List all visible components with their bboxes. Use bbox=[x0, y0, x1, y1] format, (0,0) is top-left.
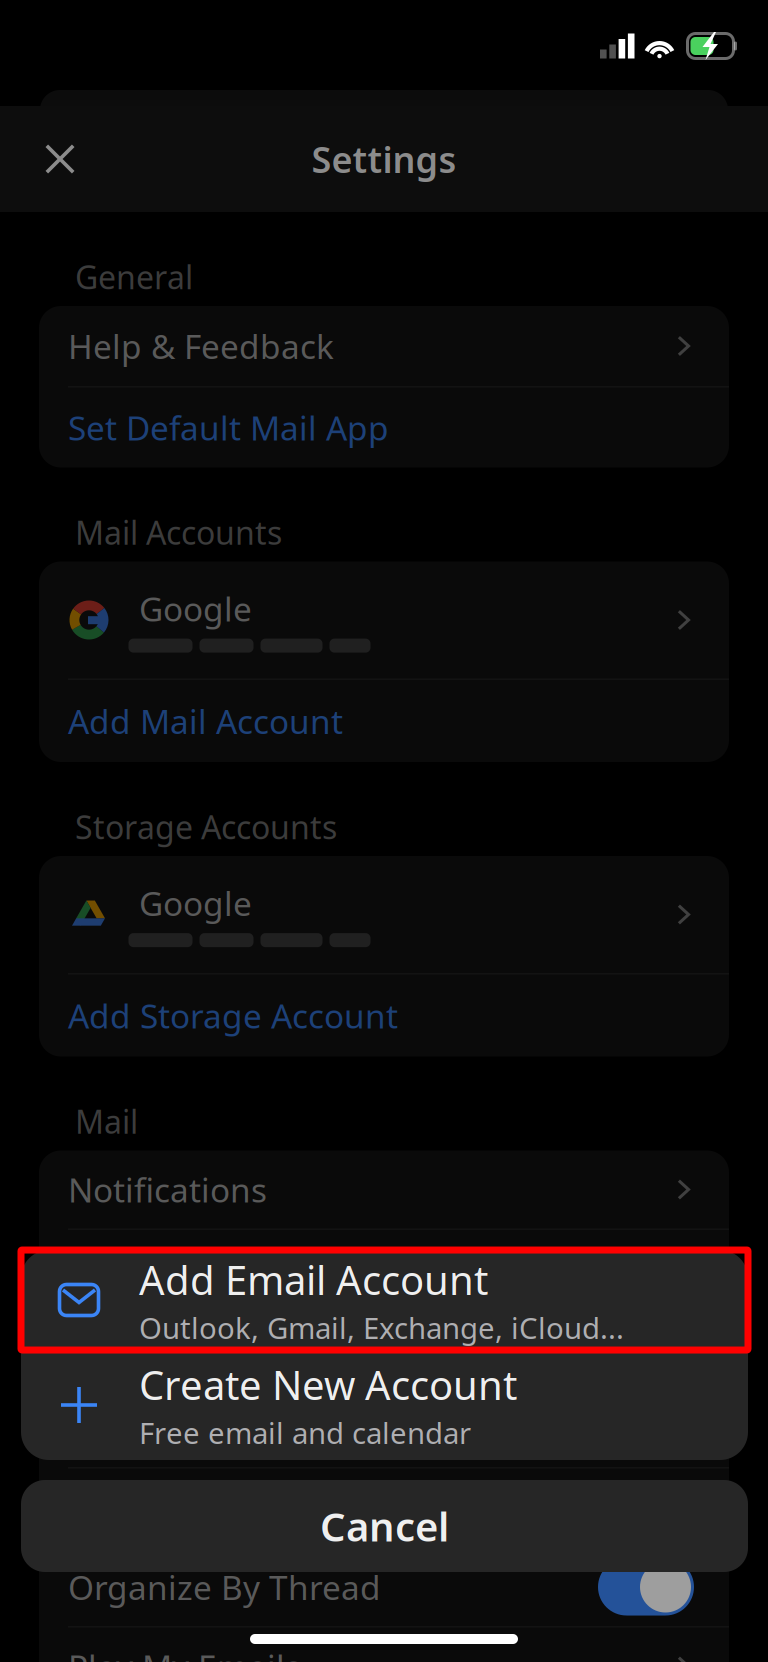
staticText: Add Email Account bbox=[139, 1253, 488, 1306]
staticText: Help & Feedback bbox=[68, 324, 334, 368]
button[interactable]: Add Storage Account bbox=[39, 974, 729, 1056]
staticText: Free email and calendar bbox=[139, 1413, 471, 1452]
staticText: Add Storage Account bbox=[68, 993, 398, 1038]
button[interactable]: Default Account bbox=[39, 1389, 729, 1467]
staticText: Set Default Mail App bbox=[68, 405, 389, 450]
staticText: Play My Emails bbox=[68, 1644, 301, 1662]
staticText: Mail Accounts bbox=[75, 511, 282, 553]
staticText: Signature bbox=[68, 1247, 221, 1291]
staticText: Google bbox=[139, 586, 252, 631]
staticText: Mail bbox=[75, 1100, 138, 1142]
button[interactable]: Add Mail Account bbox=[39, 680, 729, 762]
staticText: Organize By Thread bbox=[68, 1565, 381, 1609]
staticText: Add Mail Account bbox=[68, 699, 343, 743]
button[interactable]: Close bbox=[0, 106, 104, 212]
staticText: Default Account bbox=[68, 1406, 319, 1450]
button[interactable]: Play My Emails bbox=[39, 1627, 729, 1662]
button[interactable]: Undo Send bbox=[39, 1468, 729, 1546]
button[interactable]: Swipe Actions bbox=[39, 1309, 729, 1387]
staticText: Storage Accounts bbox=[75, 805, 337, 848]
button[interactable]: Add Email Account bbox=[21, 1250, 748, 1350]
button[interactable]: Cancel bbox=[21, 1480, 748, 1572]
button[interactable]: Set Default Mail App bbox=[39, 387, 729, 467]
button[interactable]: Google bbox=[39, 561, 729, 678]
staticText: Swipe Actions bbox=[68, 1326, 285, 1371]
staticText: Outlook, Gmail, Exchange, iCloud... bbox=[139, 1308, 624, 1347]
staticText: Notifications bbox=[68, 1167, 267, 1212]
button[interactable]: Create New Account bbox=[21, 1350, 748, 1460]
button[interactable]: Google bbox=[39, 856, 729, 973]
staticText: Cancel bbox=[320, 1499, 449, 1552]
button[interactable]: Signature bbox=[39, 1230, 729, 1308]
button[interactable]: Notifications bbox=[39, 1150, 729, 1228]
staticText: Settings bbox=[311, 135, 456, 183]
staticText: Google bbox=[139, 881, 252, 925]
staticText: Create New Account bbox=[139, 1358, 517, 1411]
staticText: General bbox=[75, 255, 193, 298]
button[interactable]: Help & Feedback bbox=[39, 306, 729, 386]
button[interactable]: Organize By Thread bbox=[39, 1548, 729, 1626]
